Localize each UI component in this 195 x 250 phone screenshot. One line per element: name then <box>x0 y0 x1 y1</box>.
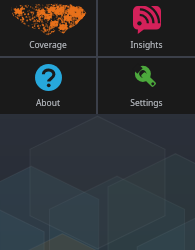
staticText: Settings <box>98 97 195 109</box>
staticText: Insights <box>98 39 195 51</box>
staticText: Coverage <box>0 39 96 51</box>
button[interactable]: Coverage map <box>0 0 96 56</box>
button[interactable]: About <box>0 58 96 114</box>
staticText: About <box>0 97 96 109</box>
button[interactable]: Insights <box>98 0 195 56</box>
button[interactable]: Settings <box>98 58 195 114</box>
